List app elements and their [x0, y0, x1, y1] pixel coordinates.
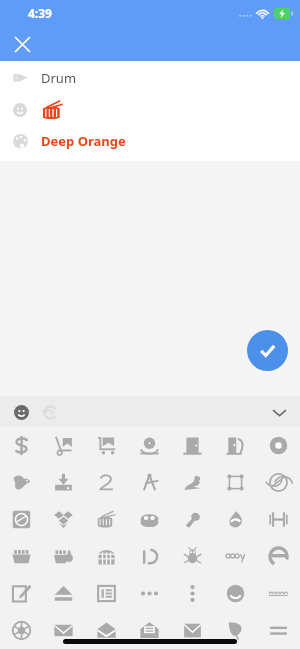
button[interactable]: Dot circle: [257, 427, 300, 464]
button[interactable]: Envelope: [42, 612, 85, 649]
button[interactable]: Drumstick: [171, 501, 214, 538]
button[interactable]: Dragon: [171, 464, 214, 501]
button[interactable]: Ember: [257, 575, 300, 612]
button[interactable]: Draw polygon: [214, 464, 257, 501]
button[interactable]: Edit: [0, 575, 42, 612]
button[interactable]: Dumpster: [0, 538, 42, 575]
button[interactable]: Emoji: [10, 401, 32, 423]
button[interactable]: Empire: [0, 612, 42, 649]
button[interactable]: Recently used: [39, 401, 61, 423]
button[interactable]: Close: [5, 27, 39, 61]
button[interactable]: Drum: [85, 501, 128, 538]
button[interactable]: Download: [42, 464, 85, 501]
button[interactable]: Dyalog: [128, 538, 171, 575]
button[interactable]: Drafting compass: [128, 464, 171, 501]
button[interactable]: Envelope open: [85, 612, 128, 649]
button[interactable]: Hide keyboard: [266, 399, 292, 425]
button[interactable]: Dropbox: [42, 501, 85, 538]
button[interactable]: Dumbbell: [257, 501, 300, 538]
staticText: 4:39: [28, 5, 52, 21]
button[interactable]: Dribbble square: [0, 501, 42, 538]
button[interactable]: Dolly flatbed: [85, 427, 128, 464]
button[interactable]: Draft2digital: [85, 464, 128, 501]
staticText: Drum: [41, 69, 77, 87]
button[interactable]: Elementor: [85, 575, 128, 612]
button[interactable]: Eject: [42, 575, 85, 612]
button[interactable]: eBay: [214, 538, 257, 575]
button[interactable]: Dollar sign: [0, 427, 42, 464]
staticText: Deep Orange: [41, 132, 126, 150]
button[interactable]: Envira: [214, 612, 257, 649]
button[interactable]: Ellipsis vertical: [171, 575, 214, 612]
button[interactable]: Dungeon: [85, 538, 128, 575]
button[interactable]: Donate: [128, 427, 171, 464]
button[interactable]: Earlybirds: [171, 538, 214, 575]
button[interactable]: Edge: [257, 538, 300, 575]
button[interactable]: Equals: [257, 612, 300, 649]
button[interactable]: Dolly: [42, 427, 85, 464]
button[interactable]: Envelope square: [171, 612, 214, 649]
button[interactable]: Envelope open text: [128, 612, 171, 649]
button[interactable]: Dribbble: [257, 464, 300, 501]
button[interactable]: Dumpster fire: [42, 538, 85, 575]
button[interactable]: Ello: [214, 575, 257, 612]
button[interactable]: Drum: [0, 61, 300, 94]
button[interactable]: Confirm: [247, 330, 288, 371]
button[interactable]: Door closed: [171, 427, 214, 464]
button[interactable]: [0, 94, 300, 125]
button[interactable]: Drupal: [214, 501, 257, 538]
button[interactable]: Deep Orange: [0, 125, 300, 157]
button[interactable]: Ellipsis horizontal: [128, 575, 171, 612]
button[interactable]: Dove: [0, 464, 42, 501]
button[interactable]: Door open: [214, 427, 257, 464]
button[interactable]: Drum steelpan: [128, 501, 171, 538]
